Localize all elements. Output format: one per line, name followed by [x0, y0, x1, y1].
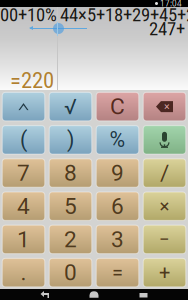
staticText: =220: [10, 67, 54, 94]
button[interactable]: 6: [94, 190, 141, 223]
staticText: ): [67, 127, 74, 152]
button[interactable]: Home: [89, 290, 99, 298]
button[interactable]: %: [94, 123, 141, 156]
button[interactable]: 1: [0, 223, 47, 256]
staticText: /: [160, 160, 169, 186]
button[interactable]: ×: [141, 90, 188, 123]
button[interactable]: =: [94, 256, 141, 289]
button[interactable]: (: [0, 123, 47, 156]
staticText: 3: [111, 226, 124, 253]
staticText: −: [159, 228, 170, 250]
staticText: %: [109, 127, 125, 152]
staticText: 8: [64, 160, 77, 186]
staticText: 247+: [149, 18, 185, 40]
staticText: +: [159, 261, 170, 284]
button[interactable]: .: [0, 256, 47, 289]
button[interactable]: 9: [94, 156, 141, 190]
button[interactable]: ×: [141, 190, 188, 223]
staticText: 00+10%: [0, 4, 57, 26]
staticText: C: [110, 93, 125, 120]
button[interactable]: 7: [0, 156, 47, 190]
staticText: (: [20, 127, 27, 152]
button[interactable]: Back: [39, 290, 49, 298]
button[interactable]: √: [47, 90, 94, 123]
staticText: 6: [111, 193, 124, 219]
staticText: ×: [159, 195, 169, 217]
button[interactable]: [141, 123, 188, 156]
button[interactable]: Recents: [138, 290, 148, 298]
button[interactable]: 4: [0, 190, 47, 223]
staticText: 2: [64, 226, 77, 253]
staticText: 9: [111, 160, 124, 186]
staticText: =: [112, 261, 123, 284]
button[interactable]: [0, 90, 47, 123]
button[interactable]: 3: [94, 223, 141, 256]
staticText: 4: [17, 193, 30, 219]
button[interactable]: ): [47, 123, 94, 156]
button[interactable]: C: [94, 90, 141, 123]
staticText: ×: [164, 100, 170, 113]
button[interactable]: /: [141, 156, 188, 190]
staticText: 7: [17, 160, 30, 186]
staticText: 5: [64, 193, 77, 219]
staticText: 44×5+18+29+45+2(: [60, 4, 188, 26]
button[interactable]: 2: [47, 223, 94, 256]
staticText: 0: [64, 259, 77, 286]
staticText: .: [20, 259, 26, 286]
button[interactable]: 5: [47, 190, 94, 223]
staticText: √: [64, 94, 77, 119]
button[interactable]: −: [141, 223, 188, 256]
button[interactable]: +: [141, 256, 188, 289]
staticText: 17:04: [160, 0, 182, 9]
button[interactable]: 0: [47, 256, 94, 289]
staticText: 1: [17, 226, 30, 253]
button[interactable]: 8: [47, 156, 94, 190]
